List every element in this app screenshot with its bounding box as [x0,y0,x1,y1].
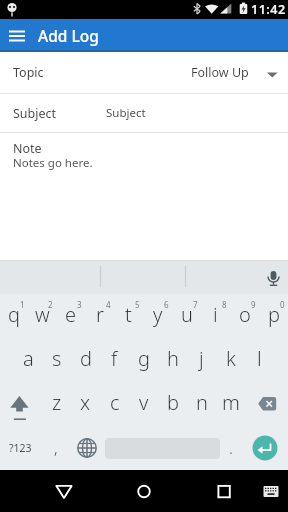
button[interactable]: k [216,338,245,382]
staticText: n [196,389,208,416]
staticText: y [153,301,163,328]
button[interactable]: r [85,294,114,338]
button[interactable]: w [28,294,56,338]
button[interactable]: m [216,382,245,426]
staticText: Add Log [38,25,99,46]
button[interactable] [96,470,192,512]
button[interactable] [245,382,288,426]
button[interactable]: , [40,426,72,470]
staticText: o [239,301,251,328]
button[interactable]: p [259,294,288,338]
button[interactable]: g [129,338,158,382]
button[interactable]: z [43,382,71,426]
staticText: s [52,345,62,372]
staticText: 5 [135,299,140,310]
button[interactable]: u [172,294,201,338]
staticText: x [80,389,91,416]
staticText: t [125,301,132,328]
staticText: q [8,301,20,328]
staticText: ?123 [9,441,32,455]
button[interactable]: c [100,382,129,426]
button[interactable]: ?123 [0,426,40,470]
button[interactable]: b [158,382,187,426]
staticText: 1 [20,299,25,310]
button[interactable]: j [187,338,216,382]
staticText: Subject [106,105,146,121]
staticText: . [229,437,233,459]
staticText: p [268,301,280,328]
staticText: u [181,301,193,328]
staticText: 4 [106,299,111,310]
button[interactable] [0,470,96,512]
staticText: f [111,345,118,372]
staticText: Notes go here. [13,155,93,171]
button[interactable]: a [14,338,42,382]
button[interactable]: q [0,294,28,338]
button[interactable]: . [220,426,242,470]
staticText: i [213,301,218,328]
staticText: l [257,345,262,372]
staticText: 7 [193,299,198,310]
button[interactable]: t [114,294,143,338]
button[interactable] [72,426,102,470]
staticText: k [226,345,236,372]
button[interactable]: f [100,338,129,382]
button[interactable]: Follow Up [191,64,278,81]
staticText: g [138,345,150,372]
staticText: 0 [280,299,285,310]
button[interactable]: Subject [0,94,288,132]
button[interactable]: d [71,338,100,382]
button[interactable]: e [56,294,85,338]
staticText: w [35,301,50,328]
button[interactable] [242,426,288,470]
staticText: , [54,437,58,459]
staticText: j [199,345,204,372]
button[interactable]: y [143,294,172,338]
button[interactable]: Note [13,140,288,173]
staticText: c [110,389,120,416]
button[interactable]: n [187,382,216,426]
button[interactable]: Topic [0,52,288,93]
button[interactable] [7,26,26,45]
staticText: z [52,389,62,416]
staticText: v [139,389,149,416]
staticText: 11:42 [251,1,286,18]
staticText: a [23,345,34,372]
button[interactable]: l [245,338,274,382]
button[interactable]: i [201,294,230,338]
staticText: 3 [77,299,82,310]
button[interactable]: o [230,294,259,338]
staticText: e [65,301,77,328]
staticText: Note [13,140,42,157]
button[interactable] [105,426,220,470]
staticText: m [222,389,240,416]
button[interactable] [0,382,43,426]
button[interactable]: v [129,382,158,426]
button[interactable] [254,260,288,294]
button[interactable]: h [158,338,187,382]
button[interactable]: x [71,382,100,426]
staticText: Subject [13,105,57,122]
staticText: b [167,389,179,416]
staticText: Topic [13,64,44,81]
button[interactable]: s [42,338,71,382]
staticText: 9 [251,299,256,310]
staticText: h [167,345,179,372]
staticText: 2 [48,299,53,310]
staticText: d [80,345,92,372]
staticText: 6 [164,299,169,310]
staticText: 8 [222,299,227,310]
button[interactable] [192,470,288,512]
staticText: r [96,301,104,328]
staticText: Follow Up [191,64,249,81]
